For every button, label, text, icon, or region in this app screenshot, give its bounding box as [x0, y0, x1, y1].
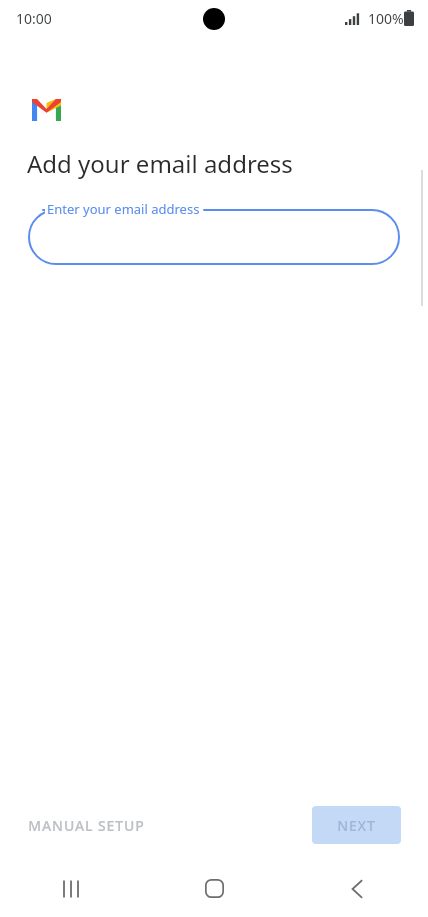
button[interactable] [28, 209, 400, 265]
staticText: NEXT [337, 816, 376, 835]
staticText: Enter your email address [47, 200, 200, 218]
button[interactable]: MANUAL SETUP [16, 808, 157, 843]
button[interactable]: Home [142, 860, 286, 917]
button[interactable]: Recent apps [0, 860, 142, 917]
staticText: 100% [368, 9, 404, 28]
button[interactable]: Back [286, 860, 428, 917]
staticText: Add your email address [27, 147, 293, 180]
staticText: 10:00 [16, 9, 52, 28]
button[interactable]: NEXT [312, 806, 401, 844]
staticText: MANUAL SETUP [28, 816, 145, 835]
